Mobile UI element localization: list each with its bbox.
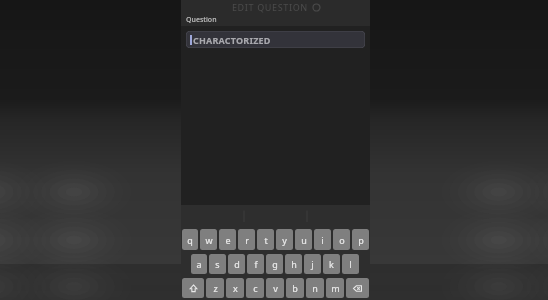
- button[interactable]: h: [285, 254, 302, 274]
- button[interactable]: n: [306, 278, 324, 298]
- staticText: i: [321, 234, 324, 246]
- button[interactable]: z: [206, 278, 224, 298]
- staticText: x: [233, 282, 238, 294]
- staticText: m: [331, 282, 340, 294]
- staticText: g: [272, 258, 278, 270]
- button[interactable]: EDIT QUESTION: [181, 0, 370, 13]
- button[interactable]: q: [182, 229, 198, 250]
- button[interactable]: o: [333, 229, 350, 250]
- button[interactable]: c: [246, 278, 264, 298]
- button[interactable]: x: [226, 278, 244, 298]
- button[interactable]: a: [191, 254, 207, 274]
- staticText: c: [253, 282, 258, 294]
- button[interactable]: u: [295, 229, 312, 250]
- button[interactable]: i: [314, 229, 331, 250]
- button[interactable]: m: [326, 278, 344, 298]
- staticText: n: [312, 282, 318, 294]
- button[interactable]: k: [323, 254, 340, 274]
- staticText: k: [329, 258, 334, 270]
- button[interactable]: y: [276, 229, 293, 250]
- button[interactable]: j: [304, 254, 321, 274]
- button[interactable]: l: [342, 254, 359, 274]
- staticText: a: [196, 258, 202, 270]
- staticText: h: [291, 258, 297, 270]
- staticText: r: [245, 234, 249, 246]
- staticText: CHARACTORIZED: [193, 34, 271, 46]
- button[interactable]: r: [238, 229, 255, 250]
- button[interactable]: w: [200, 229, 217, 250]
- staticText: s: [215, 258, 220, 270]
- button[interactable]: Backspace: [346, 278, 369, 298]
- button[interactable]: g: [266, 254, 283, 274]
- button[interactable]: f: [247, 254, 264, 274]
- button[interactable]: t: [257, 229, 274, 250]
- staticText: e: [225, 234, 231, 246]
- staticText: b: [292, 282, 298, 294]
- staticText: t: [264, 234, 268, 246]
- staticText: u: [301, 234, 307, 246]
- button[interactable]: d: [228, 254, 245, 274]
- staticText: EDIT QUESTION: [232, 1, 308, 13]
- staticText: d: [234, 258, 240, 270]
- staticText: o: [339, 234, 345, 246]
- button[interactable]: s: [209, 254, 226, 274]
- staticText: p: [358, 234, 364, 246]
- button[interactable]: v: [266, 278, 284, 298]
- button[interactable]: b: [286, 278, 304, 298]
- staticText: l: [349, 258, 352, 270]
- staticText: Question: [186, 15, 217, 25]
- staticText: q: [187, 234, 193, 246]
- button[interactable]: p: [352, 229, 369, 250]
- staticText: y: [282, 234, 287, 246]
- staticText: v: [273, 282, 278, 294]
- staticText: j: [311, 258, 314, 270]
- button[interactable]: Shift: [182, 278, 204, 298]
- button[interactable]: e: [219, 229, 236, 250]
- staticText: w: [205, 234, 213, 246]
- staticText: z: [213, 282, 218, 294]
- staticText: f: [254, 258, 258, 270]
- button[interactable]: CHARACTORIZED: [186, 31, 365, 48]
